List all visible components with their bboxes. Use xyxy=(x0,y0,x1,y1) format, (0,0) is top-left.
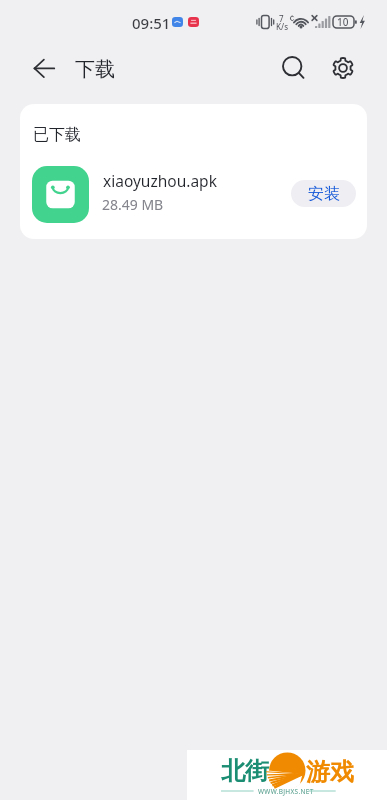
staticText: 10 xyxy=(337,15,349,29)
button[interactable]: xiaoyuzhou.apk xyxy=(20,156,367,230)
staticText: K/s xyxy=(276,21,289,32)
staticText: 7 xyxy=(279,13,284,24)
button[interactable]: 安装 xyxy=(291,180,356,207)
button[interactable]: Back xyxy=(26,52,60,86)
staticText: 游戏 xyxy=(306,757,354,787)
staticText: 下载 xyxy=(75,57,115,82)
button[interactable]: Search xyxy=(275,49,313,87)
staticText: 安装 xyxy=(308,184,340,204)
staticText: 28.49 MB xyxy=(102,195,164,214)
staticText: 北街 xyxy=(221,756,269,786)
staticText: 已下载 xyxy=(33,125,81,145)
staticText: xiaoyuzhou.apk xyxy=(103,170,217,191)
button[interactable]: Settings xyxy=(324,49,362,87)
staticText: 09:51 xyxy=(132,13,171,33)
staticText: WWW.BJHXS.NET xyxy=(258,787,314,796)
